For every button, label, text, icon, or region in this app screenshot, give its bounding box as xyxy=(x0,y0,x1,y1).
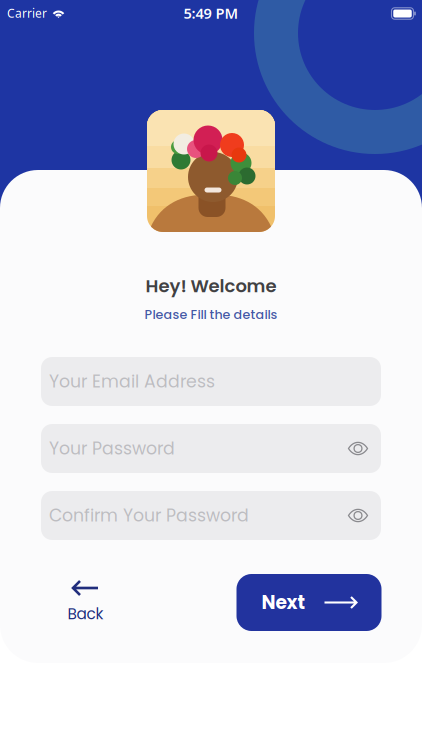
button[interactable]: Show password xyxy=(335,491,381,540)
button[interactable]: Next xyxy=(236,574,381,631)
button[interactable]: Show password xyxy=(335,424,381,473)
staticText: Please Fill the details xyxy=(144,306,277,323)
staticText: Confirm Your Password xyxy=(49,503,249,528)
staticText: Carrier xyxy=(7,5,47,21)
staticText: Hey! Welcome xyxy=(145,273,276,299)
staticText: Your Password xyxy=(49,436,175,461)
staticText: Next xyxy=(261,589,305,615)
staticText: Your Email Address xyxy=(49,369,215,394)
staticText: 5:49 PM xyxy=(183,3,238,23)
staticText: Back xyxy=(67,603,103,625)
button[interactable]: Back xyxy=(61,579,109,627)
